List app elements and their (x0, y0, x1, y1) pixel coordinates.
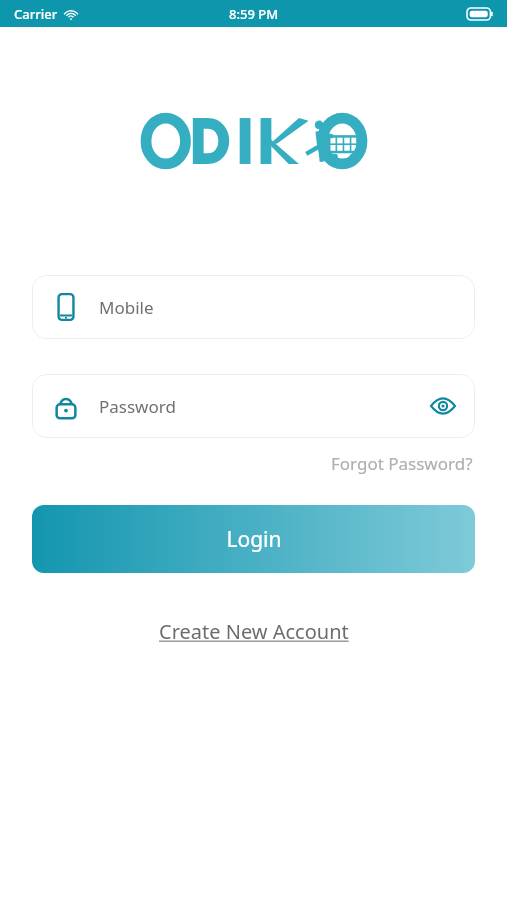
staticText: 8:59 PM (229, 5, 279, 23)
button[interactable]: Mobile (32, 275, 475, 339)
staticText: Password (99, 395, 176, 418)
button[interactable]: Forgot Password? (329, 448, 475, 479)
button[interactable]: Password (32, 374, 475, 438)
staticText: Carrier (14, 5, 58, 23)
staticText: Login (226, 525, 282, 554)
button[interactable]: Show password (419, 382, 467, 430)
staticText: Forgot Password? (331, 452, 473, 475)
staticText: Create New Account (159, 618, 349, 645)
staticText: Mobile (99, 296, 154, 319)
button[interactable]: Login (32, 505, 475, 573)
button[interactable]: Create New Account (149, 614, 359, 649)
